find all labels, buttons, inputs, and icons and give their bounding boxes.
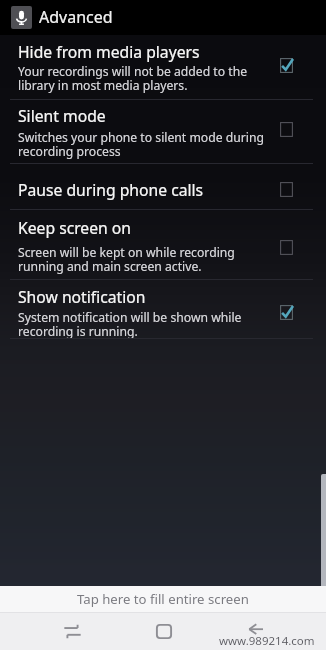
button[interactable]: Keep screen on — [0, 210, 326, 279]
button[interactable]: Advanced — [0, 0, 326, 35]
staticText: Pause during phone calls — [18, 179, 204, 200]
staticText: System notification will be shown while … — [18, 309, 242, 340]
staticText: Hide from media players — [18, 41, 200, 62]
staticText: Your recordings will not be added to the… — [18, 63, 248, 94]
staticText: Show notification — [18, 286, 146, 307]
button[interactable]: Tap here to fill entire screen — [0, 586, 326, 612]
button[interactable]: Back — [234, 610, 278, 648]
staticText: Tap here to fill entire screen — [77, 590, 249, 608]
staticText: www.989214.com — [219, 633, 315, 649]
staticText: Advanced — [39, 6, 113, 28]
button[interactable]: Show notification — [0, 280, 326, 338]
button[interactable]: Recents — [50, 612, 94, 650]
button[interactable]: Pause during phone calls — [0, 164, 326, 209]
staticText: Silent mode — [18, 105, 106, 126]
staticText: Keep screen on — [18, 217, 131, 238]
button[interactable]: Home — [142, 612, 186, 650]
staticText: Screen will be kept on while recording r… — [18, 244, 235, 275]
button[interactable]: Silent mode — [0, 100, 326, 163]
button[interactable]: Hide from media players — [0, 35, 326, 99]
staticText: Switches your phone to silent mode durin… — [18, 129, 264, 160]
